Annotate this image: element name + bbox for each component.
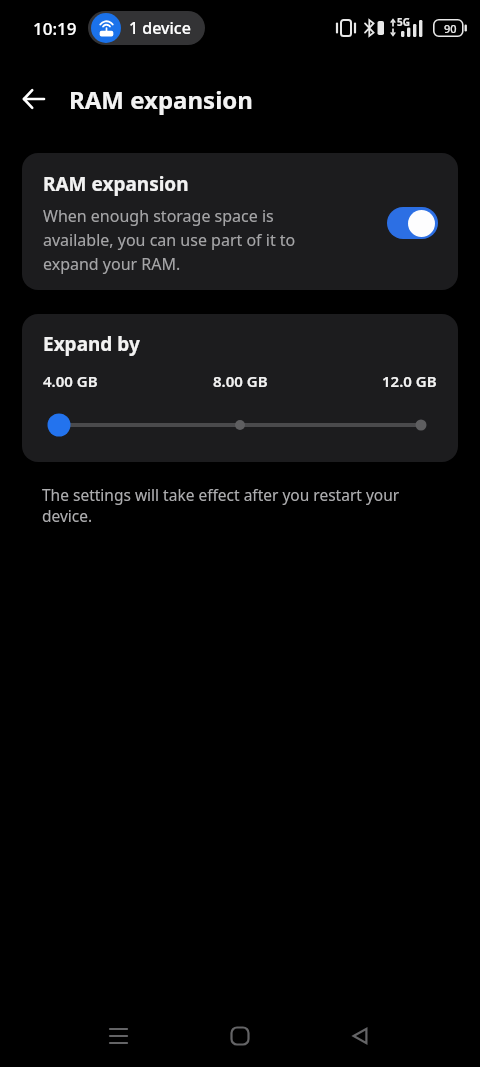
staticText: RAM expansion — [69, 83, 253, 116]
staticText: 90 — [444, 21, 457, 36]
staticText: 4.00 GB — [43, 371, 98, 391]
button[interactable]: 1 device — [88, 11, 205, 45]
staticText: 10:19 — [33, 17, 77, 40]
button[interactable]: Expand by — [22, 314, 458, 462]
button[interactable] — [210, 1006, 270, 1066]
button[interactable] — [330, 1006, 390, 1066]
staticText: 8.00 GB — [213, 371, 268, 391]
button[interactable] — [0, 71, 56, 127]
staticText: 1 device — [129, 17, 191, 39]
button[interactable] — [90, 1006, 150, 1066]
staticText: RAM expansion — [43, 171, 189, 197]
staticText: 5G — [397, 15, 410, 29]
button[interactable]: RAM expansion — [22, 153, 458, 290]
staticText: 12.0 GB — [382, 371, 437, 391]
staticText: When enough storage space is available, … — [43, 205, 296, 275]
staticText: Expand by — [43, 331, 140, 357]
staticText: The settings will take effect after you … — [42, 484, 400, 526]
button[interactable] — [387, 207, 438, 239]
